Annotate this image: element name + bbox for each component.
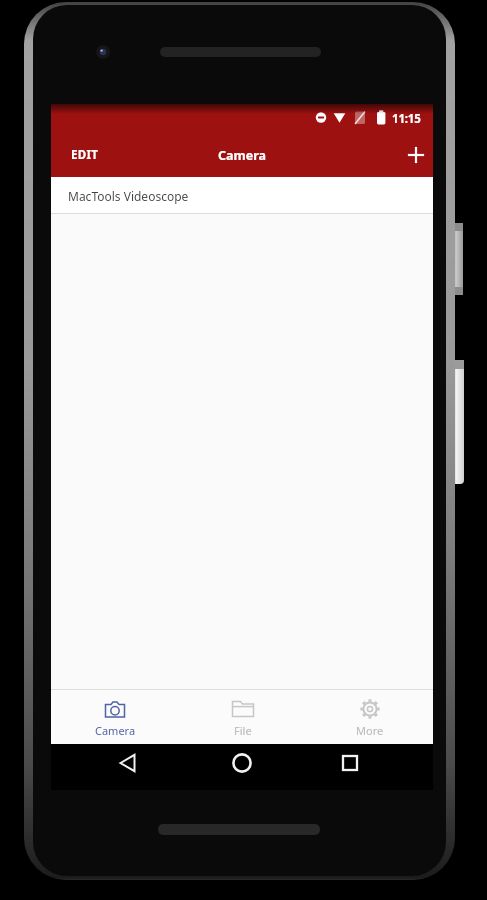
button[interactable]: More	[306, 690, 433, 744]
button[interactable]: EDIT	[51, 139, 107, 171]
staticText: File	[234, 723, 252, 738]
button[interactable]: MacTools Videoscope	[51, 177, 433, 214]
button[interactable]	[115, 749, 143, 785]
staticText: Camera	[95, 723, 136, 738]
staticText: Camera	[218, 147, 266, 164]
staticText: MacTools Videoscope	[68, 188, 189, 204]
button[interactable]	[228, 749, 256, 785]
staticText: 11:15	[392, 111, 421, 127]
button[interactable]	[405, 144, 427, 166]
button[interactable]	[336, 749, 364, 785]
staticText: EDIT	[71, 147, 99, 163]
staticText: More	[356, 723, 384, 738]
button[interactable]: Camera	[51, 690, 179, 744]
button[interactable]: File	[179, 690, 306, 744]
